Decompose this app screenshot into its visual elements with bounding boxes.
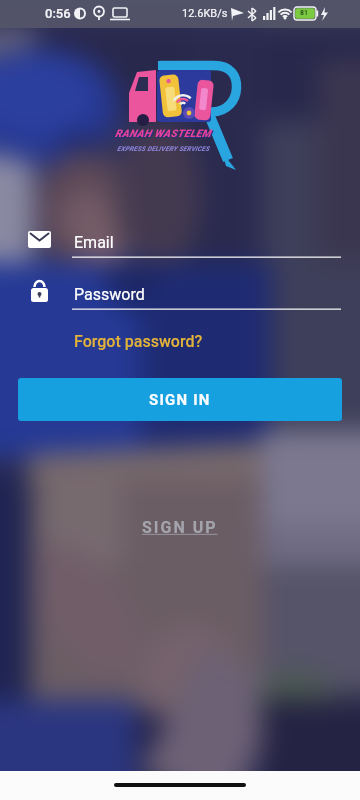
staticText: EXPRESS DELIVERY SERVICES bbox=[117, 145, 210, 153]
staticText: RANAH WASTELEM bbox=[116, 128, 212, 140]
staticText: Password bbox=[74, 285, 145, 304]
button[interactable] bbox=[20, 222, 340, 262]
staticText: 81 bbox=[300, 9, 309, 17]
staticText: SIGN IN bbox=[149, 391, 211, 409]
button[interactable]: SIGN IN bbox=[18, 378, 342, 421]
staticText: SIGN UP bbox=[142, 518, 218, 537]
button[interactable]: Forgot password? bbox=[0, 0, 129, 19]
staticText: 12.6KB/s bbox=[182, 7, 228, 20]
staticText: RANAH WASTELEM bbox=[115, 127, 211, 139]
staticText: 0:56 bbox=[45, 6, 71, 21]
button[interactable] bbox=[20, 275, 340, 315]
staticText: Email bbox=[74, 233, 114, 252]
button[interactable]: SIGN UP bbox=[142, 518, 218, 537]
